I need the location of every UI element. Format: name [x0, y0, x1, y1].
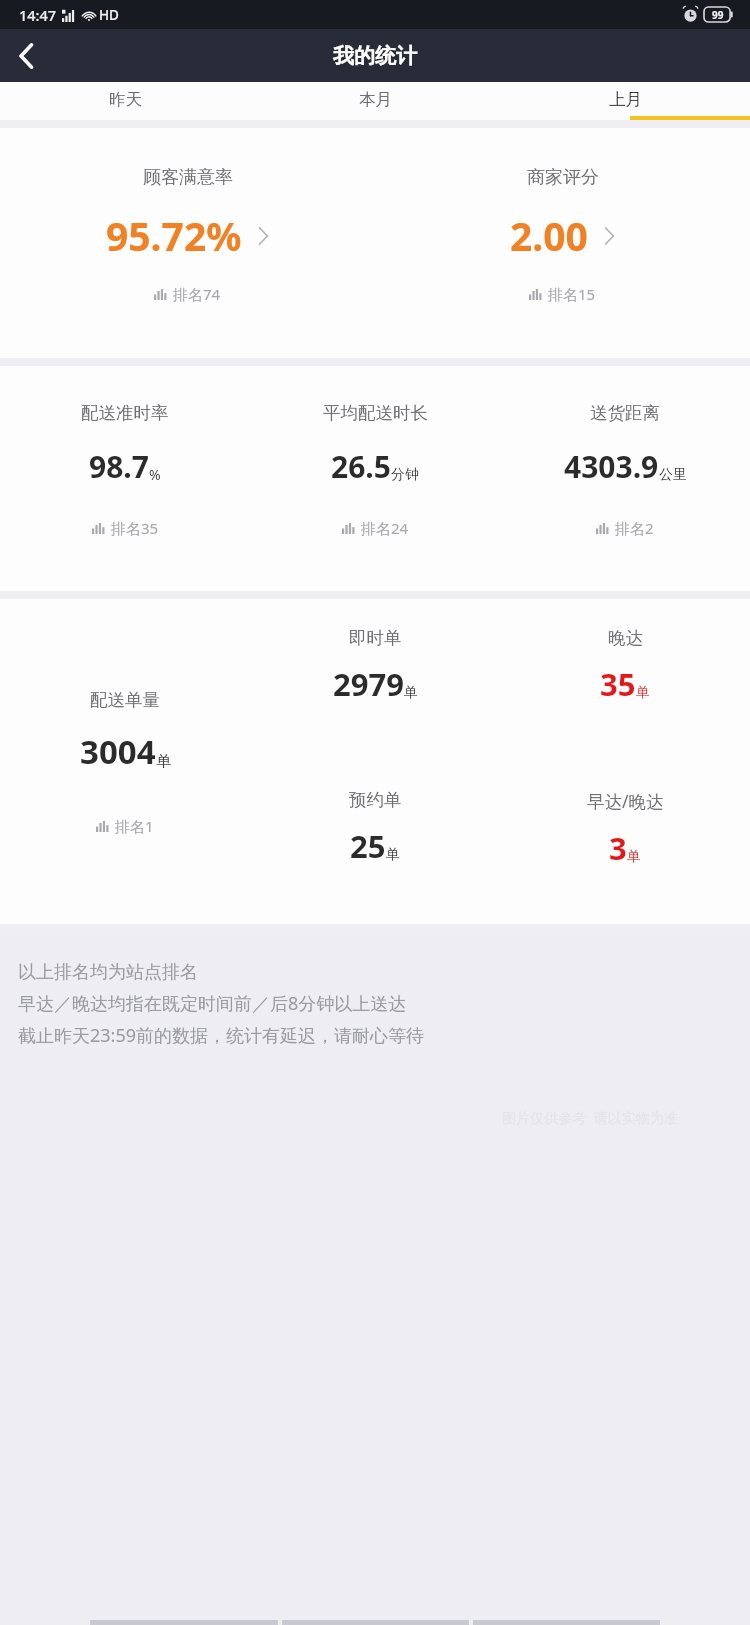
staticText: 即时单: [349, 627, 402, 649]
staticText: 25: [350, 825, 386, 867]
button[interactable]: 配送准时率: [0, 366, 250, 591]
staticText: 35: [600, 663, 636, 705]
staticText: 分钟: [391, 466, 419, 484]
button[interactable]: 上月: [500, 82, 750, 120]
button[interactable]: 送货距离: [500, 366, 750, 591]
staticText: 排名1: [115, 816, 154, 836]
staticText: 送货距离: [590, 402, 660, 424]
staticText: 排名35: [111, 518, 159, 538]
button[interactable]: 昨天: [0, 82, 250, 120]
staticText: 截止昨天23:59前的数据，统计有延迟，请耐心等待: [18, 1023, 425, 1048]
button[interactable]: 平均配送时长: [250, 366, 500, 591]
staticText: 26.5: [331, 446, 391, 487]
button[interactable]: 配送单量: [0, 599, 250, 924]
staticText: 单: [627, 848, 641, 866]
staticText: 99: [712, 8, 724, 22]
staticText: 98.7: [89, 446, 149, 487]
staticText: 晚达: [608, 627, 643, 649]
staticText: 排名15: [548, 284, 596, 304]
staticText: 2.00: [510, 209, 588, 262]
staticText: 排名2: [615, 518, 654, 538]
staticText: 平均配送时长: [323, 402, 428, 424]
button[interactable]: 预约单: [250, 761, 500, 924]
staticText: 3: [609, 827, 627, 869]
staticText: 单: [156, 752, 171, 771]
staticText: 我的统计: [333, 43, 417, 69]
staticText: 配送单量: [90, 689, 160, 711]
staticText: 2979: [333, 663, 404, 705]
staticText: 上月: [609, 89, 642, 110]
staticText: 顾客满意率: [143, 166, 233, 189]
button[interactable]: 早达/晚达: [500, 761, 750, 924]
staticText: 预约单: [349, 789, 402, 811]
staticText: %: [149, 465, 161, 484]
staticText: 单: [636, 684, 650, 702]
staticText: 3004: [80, 729, 156, 774]
staticText: 单: [386, 846, 400, 864]
staticText: 14:47: [19, 5, 57, 25]
staticText: 95.72%: [106, 209, 242, 262]
staticText: 商家评分: [527, 166, 599, 189]
staticText: 单: [404, 684, 418, 702]
staticText: HD: [99, 6, 119, 24]
staticText: 排名24: [361, 518, 409, 538]
staticText: 图片仅供参考 请以实物为准: [502, 1108, 678, 1127]
staticText: 4303.9: [564, 446, 659, 487]
staticText: 昨天: [109, 89, 142, 110]
button[interactable]: 本月: [250, 82, 500, 120]
staticText: 早达/晚达: [587, 789, 664, 813]
button[interactable]: Back: [0, 30, 52, 82]
staticText: 公里: [659, 466, 687, 484]
button[interactable]: 即时单: [250, 599, 500, 761]
staticText: 排名74: [173, 284, 221, 304]
button[interactable]: 商家评分: [375, 128, 750, 358]
staticText: 以上排名均为站点排名: [18, 961, 198, 984]
staticText: 本月: [359, 89, 392, 110]
button[interactable]: 晚达: [500, 599, 750, 761]
staticText: 配送准时率: [81, 402, 169, 424]
button[interactable]: 顾客满意率: [0, 128, 375, 358]
staticText: 早达／晚达均指在既定时间前／后8分钟以上送达: [18, 991, 407, 1016]
